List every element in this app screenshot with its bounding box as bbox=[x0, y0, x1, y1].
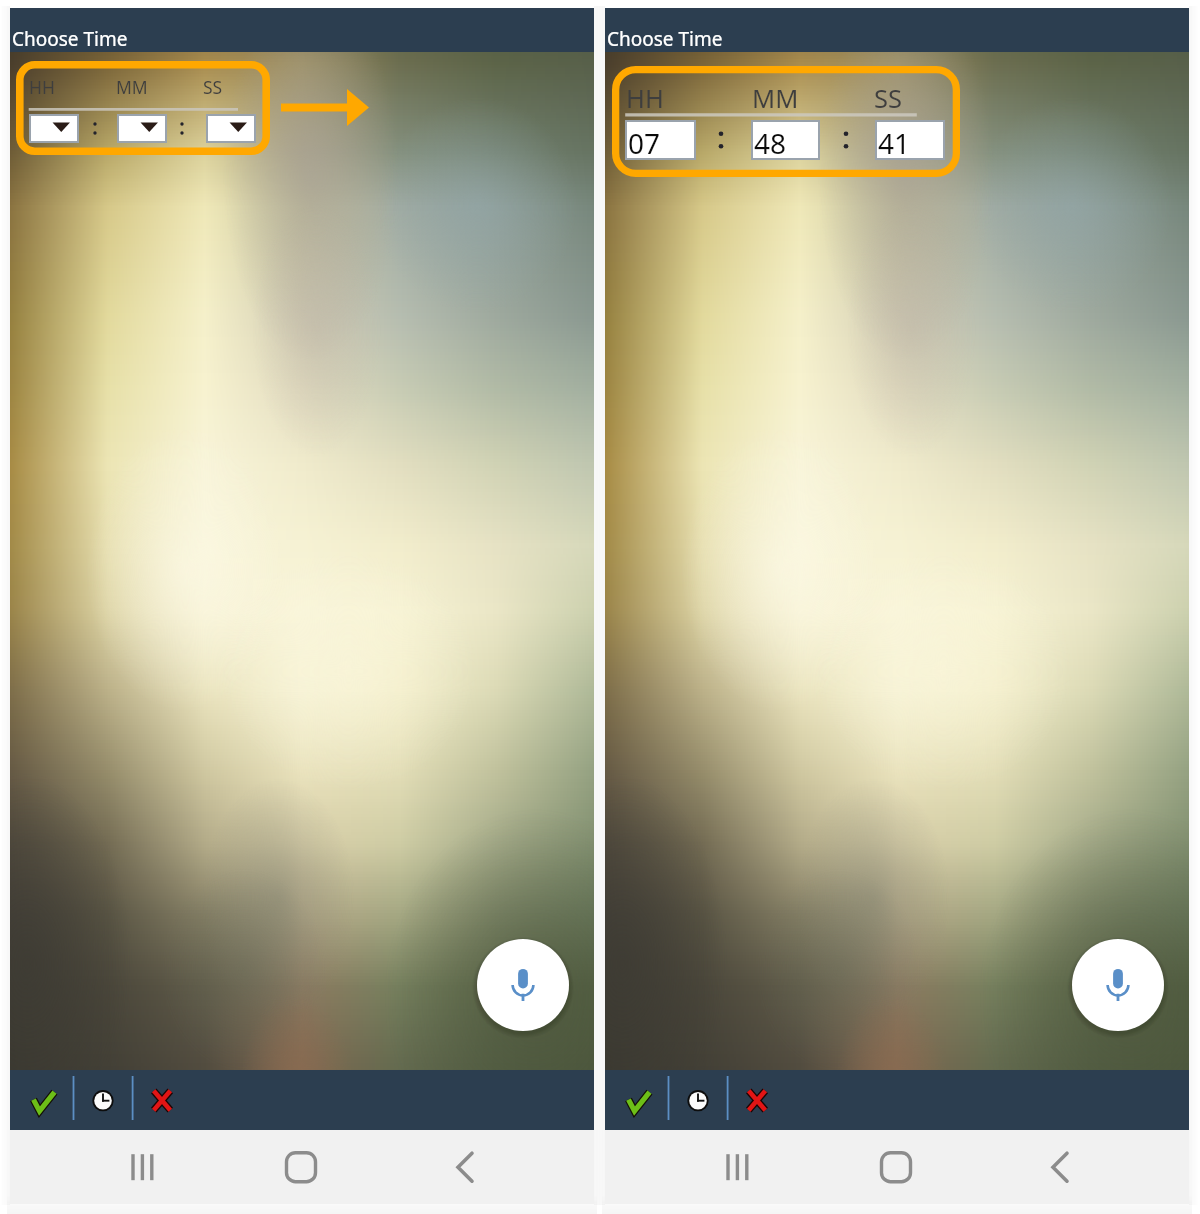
staticText: HH bbox=[626, 81, 664, 116]
button[interactable]: HH bbox=[16, 61, 270, 155]
button[interactable]: Voice input bbox=[1072, 939, 1164, 1031]
button[interactable]: Set time bbox=[85, 1070, 133, 1128]
button[interactable]: Recents bbox=[100, 1130, 200, 1203]
button[interactable]: 07 bbox=[625, 120, 696, 160]
staticText: Choose Time bbox=[607, 26, 723, 52]
button[interactable]: Set time bbox=[680, 1070, 728, 1128]
staticText: HH bbox=[29, 75, 55, 99]
button[interactable]: Voice input bbox=[477, 939, 569, 1031]
button[interactable]: HH bbox=[612, 66, 960, 177]
staticText: SS bbox=[874, 81, 902, 116]
staticText: 07 bbox=[628, 124, 661, 162]
staticText: Choose Time bbox=[12, 26, 128, 52]
staticText: SS bbox=[203, 75, 223, 99]
staticText: MM bbox=[116, 75, 148, 99]
staticText: MM bbox=[752, 81, 799, 116]
button[interactable] bbox=[117, 114, 167, 143]
staticText: 41 bbox=[878, 124, 911, 162]
button[interactable]: Home bbox=[251, 1130, 351, 1203]
button[interactable]: Recents bbox=[695, 1130, 795, 1203]
button[interactable]: Accept bbox=[618, 1070, 666, 1128]
button[interactable]: 41 bbox=[875, 120, 945, 160]
button[interactable] bbox=[206, 114, 256, 143]
button[interactable]: Cancel bbox=[739, 1070, 787, 1128]
button[interactable]: 48 bbox=[751, 120, 820, 160]
button[interactable] bbox=[29, 114, 79, 143]
button[interactable]: Accept bbox=[23, 1070, 71, 1128]
button[interactable]: Home bbox=[846, 1130, 946, 1203]
staticText: 48 bbox=[754, 124, 787, 162]
button[interactable]: Back bbox=[416, 1130, 516, 1203]
button[interactable]: Back bbox=[1011, 1130, 1111, 1203]
button[interactable]: Cancel bbox=[144, 1070, 192, 1128]
